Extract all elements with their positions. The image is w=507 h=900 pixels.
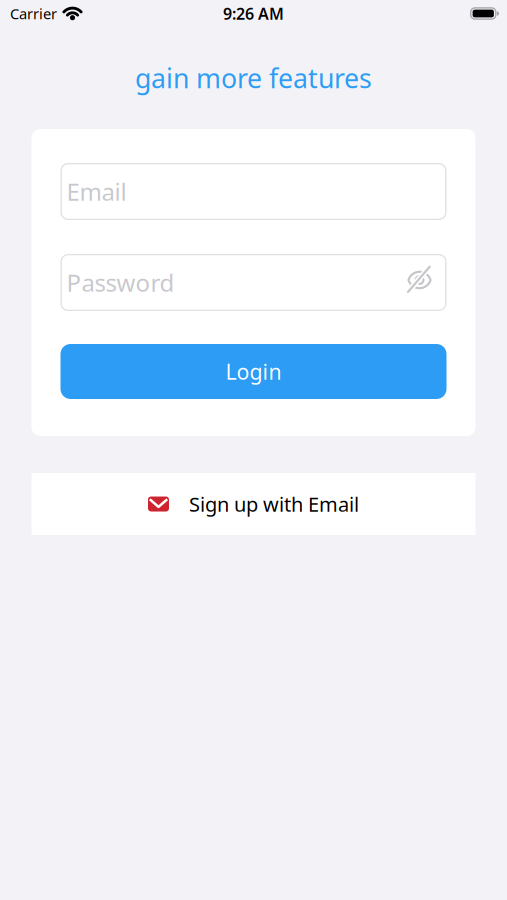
staticText: 9:26 AM bbox=[223, 3, 284, 24]
staticText: Password bbox=[66, 267, 174, 298]
textField[interactable]: Password bbox=[60, 254, 446, 311]
staticText: Carrier bbox=[10, 4, 57, 23]
staticText: Email bbox=[66, 176, 126, 207]
textField[interactable]: Email bbox=[60, 163, 446, 220]
staticText: Login bbox=[225, 357, 281, 386]
button[interactable]: Login bbox=[60, 344, 446, 399]
staticText: gain more features bbox=[135, 60, 372, 96]
button[interactable]: Sign up with Email bbox=[31, 473, 475, 535]
staticText: Sign up with Email bbox=[189, 491, 359, 517]
button[interactable]: Show password bbox=[406, 269, 432, 296]
